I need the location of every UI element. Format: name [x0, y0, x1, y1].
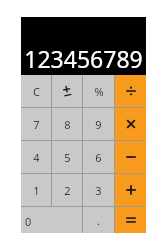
- button[interactable]: 8: [52, 108, 82, 140]
- button[interactable]: 0: [21, 207, 82, 233]
- button[interactable]: C: [21, 75, 51, 107]
- staticText: 0: [25, 214, 32, 229]
- staticText: 1234567890: [23, 43, 144, 74]
- staticText: 1: [33, 183, 40, 198]
- staticText: 6: [95, 150, 102, 165]
- staticText: 3: [95, 183, 102, 198]
- staticText: .: [97, 213, 100, 228]
- button[interactable]: Minus: [115, 141, 146, 173]
- staticText: C: [33, 84, 40, 99]
- staticText: 4: [33, 150, 40, 165]
- button[interactable]: Multiply: [115, 108, 146, 140]
- button[interactable]: Plus minus: [52, 75, 82, 107]
- button[interactable]: Equals: [115, 207, 146, 233]
- staticText: %: [94, 84, 104, 99]
- staticText: 8: [64, 117, 71, 132]
- button[interactable]: 1: [21, 174, 51, 206]
- button[interactable]: 6: [83, 141, 114, 173]
- button[interactable]: %: [83, 75, 114, 107]
- button[interactable]: Plus: [115, 174, 146, 206]
- button[interactable]: 3: [83, 174, 114, 206]
- staticText: 7: [33, 117, 40, 132]
- button[interactable]: 4: [21, 141, 51, 173]
- staticText: 2: [64, 183, 71, 198]
- button[interactable]: Divide: [115, 75, 146, 107]
- staticText: 9: [95, 117, 102, 132]
- button[interactable]: .: [83, 207, 114, 233]
- button[interactable]: 9: [83, 108, 114, 140]
- button[interactable]: 7: [21, 108, 51, 140]
- button[interactable]: 5: [52, 141, 82, 173]
- button[interactable]: 2: [52, 174, 82, 206]
- staticText: 5: [64, 150, 71, 165]
